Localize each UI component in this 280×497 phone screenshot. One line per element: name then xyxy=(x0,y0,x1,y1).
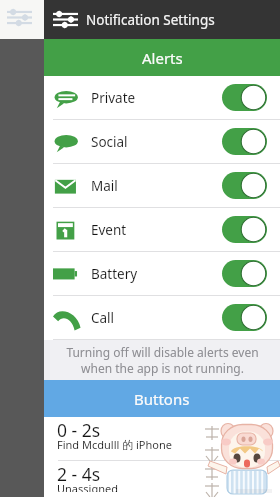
staticText: Turning off will disable alerts even whe… xyxy=(66,344,259,376)
button[interactable]: Settings xyxy=(44,0,86,39)
button[interactable]: Social xyxy=(44,120,280,164)
staticText: Social xyxy=(91,133,128,151)
staticText: Battery xyxy=(91,265,138,283)
button[interactable]: Mail xyxy=(44,164,280,208)
button[interactable]: Private xyxy=(44,76,280,120)
staticText: Private xyxy=(91,89,136,107)
staticText: Notification Settings xyxy=(86,11,215,29)
staticText: Mail xyxy=(91,177,118,195)
button[interactable]: 2 - 4s xyxy=(44,461,280,497)
button[interactable]: App icon xyxy=(0,0,44,39)
button[interactable]: Event xyxy=(44,208,280,252)
staticText: Alerts xyxy=(142,48,183,68)
staticText: Find Mcdulll 的 iPhone xyxy=(57,437,172,452)
staticText: Event xyxy=(91,221,127,239)
staticText: 2 - 4s xyxy=(57,462,101,486)
staticText: Unassigned xyxy=(57,481,118,492)
staticText: 0 - 2s xyxy=(57,418,101,442)
staticText: Call xyxy=(91,309,115,327)
button[interactable]: 0 - 2s xyxy=(44,417,280,460)
staticText: Buttons xyxy=(134,389,190,409)
button[interactable]: Call xyxy=(44,296,280,340)
button[interactable]: Battery xyxy=(44,252,280,296)
